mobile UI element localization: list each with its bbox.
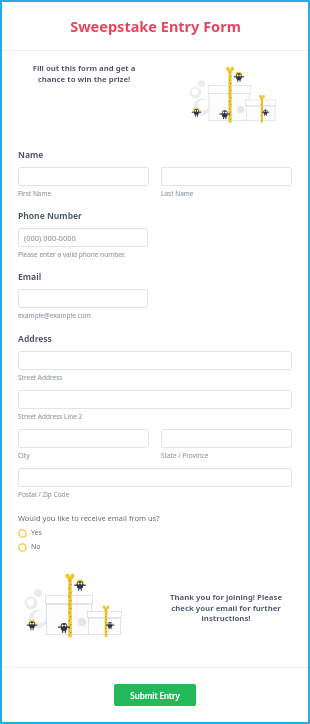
- staticText: City: [18, 451, 30, 460]
- staticText: Email: [18, 271, 42, 283]
- staticText: Sweepstake Entry Form: [70, 16, 241, 36]
- button[interactable]: [18, 167, 149, 186]
- button[interactable]: [18, 289, 148, 308]
- button[interactable]: (000) 000-0000: [18, 228, 148, 247]
- staticText: Thank you for joining! Please check your…: [160, 592, 292, 624]
- staticText: Last Name: [161, 189, 194, 198]
- staticText: Please enter a valid phone number.: [18, 250, 126, 259]
- button[interactable]: Submit Entry: [114, 684, 196, 706]
- button[interactable]: [18, 468, 292, 487]
- staticText: example@example.com: [18, 311, 91, 320]
- button[interactable]: No: [18, 541, 41, 553]
- button[interactable]: [161, 167, 292, 186]
- staticText: Fill out this form and get a chance to w…: [18, 63, 150, 85]
- staticText: State / Province: [161, 451, 209, 460]
- staticText: First Name: [18, 189, 52, 198]
- button[interactable]: Yes: [18, 527, 42, 539]
- staticText: Street Address Line 2: [18, 412, 83, 421]
- staticText: Postal / Zip Code: [18, 490, 70, 499]
- staticText: No: [31, 542, 41, 552]
- button[interactable]: [18, 429, 149, 448]
- button[interactable]: [18, 351, 292, 370]
- staticText: Would you like to receive email from us?: [18, 513, 160, 523]
- staticText: Street Address: [18, 373, 63, 382]
- staticText: Yes: [31, 528, 42, 538]
- button[interactable]: [18, 390, 292, 409]
- staticText: Address: [18, 333, 52, 345]
- staticText: Phone Number: [18, 210, 82, 222]
- button[interactable]: [161, 429, 292, 448]
- staticText: Name: [18, 149, 44, 161]
- staticText: Submit Entry: [130, 690, 180, 701]
- staticText: (000) 000-0000: [24, 233, 76, 243]
